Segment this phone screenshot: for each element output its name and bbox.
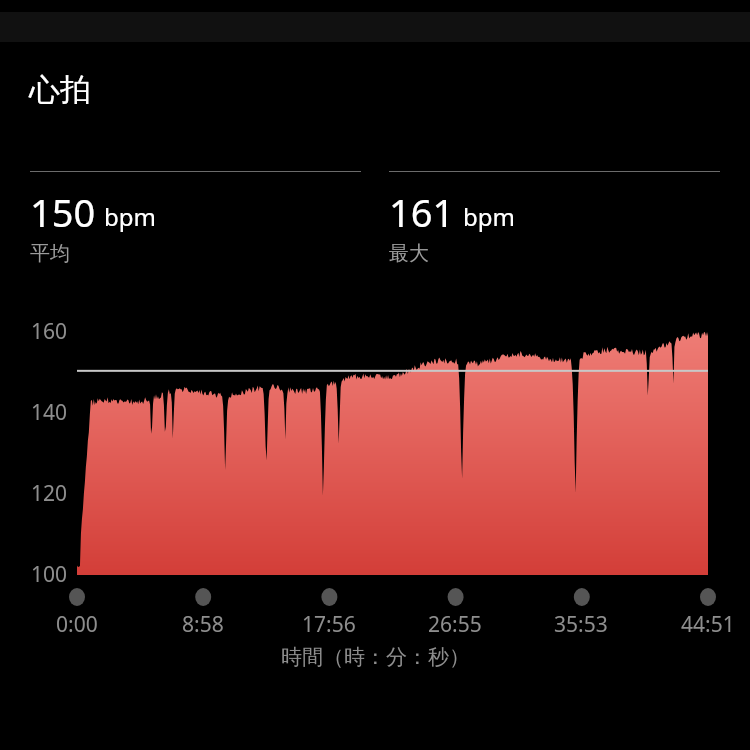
- staticText: 8:58: [182, 610, 224, 639]
- staticText: 26:55: [428, 610, 482, 639]
- staticText: 0:00: [56, 610, 98, 639]
- staticText: 17:56: [302, 610, 356, 639]
- staticText: 最大: [389, 241, 429, 266]
- staticText: bpm: [463, 200, 515, 233]
- button[interactable]: 心拍: [29, 70, 91, 109]
- button[interactable]: 150: [30, 171, 361, 266]
- staticText: 150: [30, 186, 96, 238]
- staticText: 100: [31, 560, 68, 589]
- staticText: 160: [31, 317, 68, 346]
- staticText: 120: [31, 479, 68, 508]
- staticText: 35:53: [554, 610, 608, 639]
- staticText: 心拍: [29, 70, 91, 109]
- button[interactable]: 161: [389, 171, 720, 266]
- staticText: 161: [389, 186, 455, 238]
- staticText: 平均: [30, 241, 70, 266]
- staticText: 時間（時：分：秒）: [281, 644, 470, 670]
- staticText: bpm: [104, 200, 156, 233]
- staticText: 140: [31, 398, 68, 427]
- staticText: 44:51: [681, 610, 735, 639]
